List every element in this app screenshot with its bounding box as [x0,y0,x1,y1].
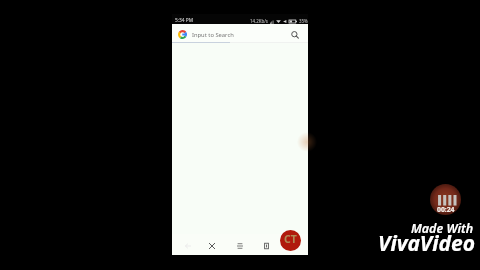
staticText: Input to Search [192,31,234,39]
button[interactable]: Stop loading [203,237,220,254]
staticText: VivaVideo [378,229,475,258]
button[interactable]: Account [280,230,301,251]
button[interactable]: Tabs [258,237,275,254]
staticText: 35% [299,18,308,24]
staticText: 14.2Kb/s [250,18,268,24]
staticText: 5:34 PM [175,17,194,24]
button[interactable]: Search [288,28,301,41]
button[interactable]: Menu [231,237,248,254]
button[interactable]: Search box [172,24,308,43]
staticText: CT [284,232,297,246]
staticText: 00:24 [437,205,455,214]
staticText: Made With [411,220,474,237]
